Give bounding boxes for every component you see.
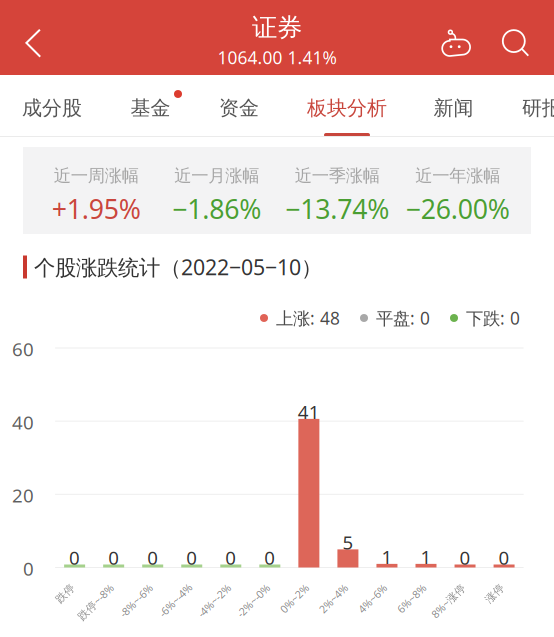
staticText: 0	[69, 545, 80, 570]
button[interactable]: 板块分析	[297, 75, 397, 137]
staticText: 基金	[130, 96, 170, 120]
staticText: 涨停	[484, 587, 506, 600]
staticText: 近一季涨幅	[295, 165, 380, 186]
staticText: +1.95%	[52, 191, 141, 226]
staticText: 近一月涨幅	[174, 165, 259, 186]
staticText: 近一周涨幅	[54, 165, 139, 186]
staticText: 0%~2%	[276, 591, 312, 605]
staticText: 跌停~-8%	[73, 595, 119, 609]
staticText: 1	[420, 544, 431, 569]
staticText: −1.86%	[172, 191, 261, 226]
staticText: 0	[459, 545, 470, 570]
staticText: 资金	[219, 96, 259, 120]
staticText: 跌停	[54, 587, 76, 600]
staticText: 0	[225, 545, 236, 570]
staticText: 4%~6%	[355, 591, 391, 605]
staticText: 1	[381, 544, 392, 569]
staticText: 0	[147, 545, 158, 570]
staticText: 0	[108, 545, 119, 570]
staticText: -4%~-2%	[193, 593, 235, 608]
button[interactable]: 成分股	[12, 75, 92, 137]
staticText: -6%~-4%	[155, 593, 197, 607]
staticText: 研报	[522, 96, 554, 120]
button[interactable]: Back	[0, 0, 54, 75]
staticText: 60	[12, 337, 34, 361]
staticText: 证券	[252, 12, 302, 43]
staticText: 个股涨跌统计（2022−05−10）	[34, 253, 322, 281]
staticText: 0	[186, 545, 197, 570]
button[interactable]: Search	[495, 0, 549, 75]
staticText: 0	[23, 556, 34, 581]
staticText: 6%~8%	[394, 591, 430, 605]
staticText: −13.74%	[285, 191, 389, 226]
staticText: 平盘: 0	[376, 306, 430, 329]
staticText: -8%~-6%	[115, 593, 157, 608]
staticText: 新闻	[433, 96, 473, 120]
staticText: 成分股	[22, 96, 82, 120]
staticText: 41	[298, 399, 320, 424]
staticText: −26.00%	[406, 191, 510, 226]
staticText: 下跌: 0	[466, 306, 520, 329]
button[interactable]: 新闻	[423, 75, 484, 137]
button[interactable]: 基金	[120, 75, 181, 137]
staticText: 0	[264, 545, 275, 570]
staticText: 1064.00 1.41%	[217, 46, 336, 69]
staticText: 20	[12, 483, 34, 508]
staticText: -2%~-0%	[232, 593, 274, 608]
staticText: 近一年涨幅	[415, 165, 500, 186]
staticText: 0	[499, 545, 510, 570]
staticText: 8%~涨停	[427, 594, 470, 608]
button[interactable]: 研报	[511, 75, 554, 137]
staticText: 2%~4%	[315, 591, 351, 605]
staticText: 40	[12, 410, 34, 435]
staticText: 5	[342, 530, 353, 555]
staticText: 上涨: 48	[276, 306, 340, 329]
button[interactable]: 资金	[208, 75, 269, 137]
button[interactable]: Assistant	[432, 0, 488, 75]
staticText: 板块分析	[307, 96, 387, 120]
